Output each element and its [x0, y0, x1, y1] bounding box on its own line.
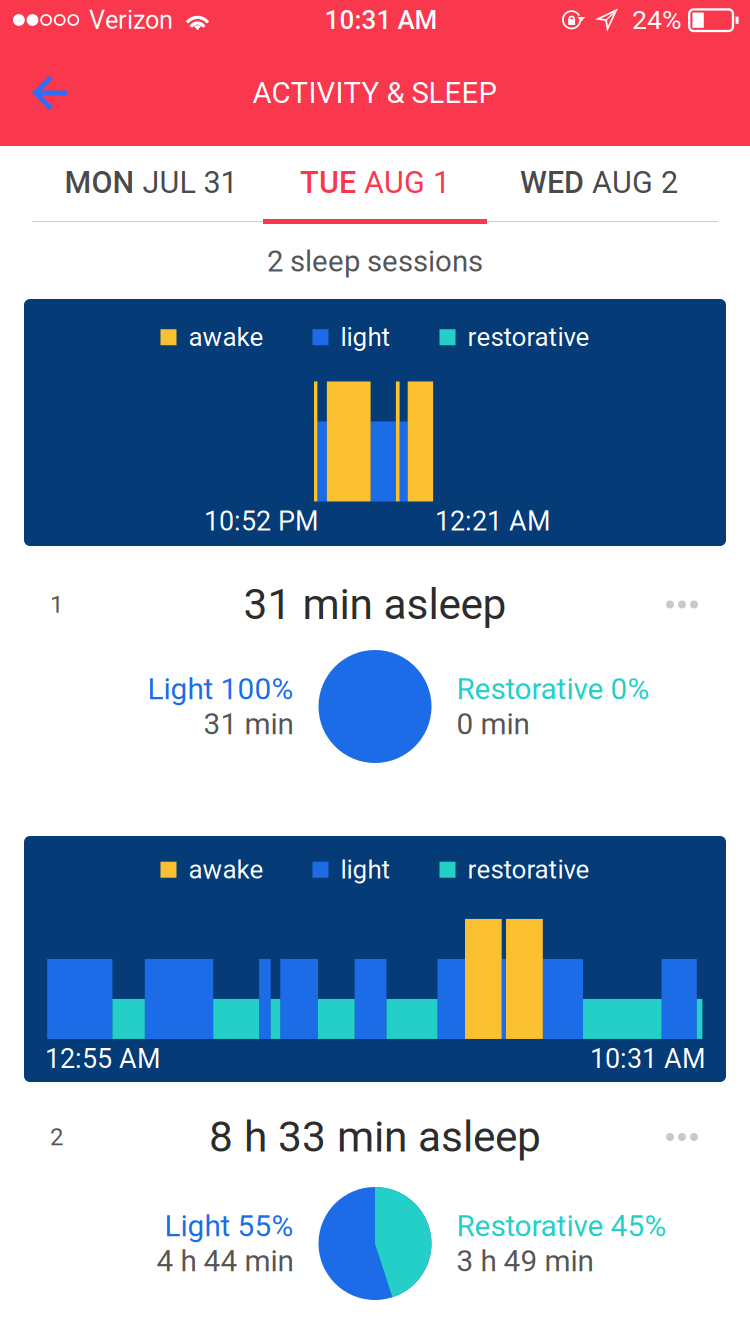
- staticText: light: [340, 322, 390, 352]
- staticText: 10:31 AM: [590, 1043, 706, 1075]
- staticText: 12:55 AM: [45, 1043, 161, 1075]
- staticText: 1: [50, 590, 63, 618]
- button[interactable]: Session options: [642, 1113, 750, 1161]
- staticText: 10:31 AM: [324, 5, 437, 35]
- staticText: 12:21 AM: [435, 505, 551, 537]
- staticText: 24%: [632, 4, 682, 36]
- staticText: awake: [188, 322, 263, 352]
- button[interactable]: MON: [39, 146, 263, 224]
- staticText: light: [340, 854, 390, 885]
- button[interactable]: TUE: [263, 146, 487, 224]
- staticText: 2: [50, 1123, 63, 1151]
- staticText: restorative: [467, 854, 589, 885]
- staticText: 31 min: [203, 707, 293, 741]
- staticText: restorative: [467, 322, 589, 352]
- staticText: Restorative 45%: [456, 1209, 666, 1243]
- button[interactable]: Back: [0, 52, 96, 133]
- staticText: 0 min: [456, 707, 529, 741]
- staticText: Restorative 0%: [456, 672, 649, 706]
- staticText: TUE: [300, 165, 364, 200]
- staticText: Light 100%: [147, 672, 293, 706]
- staticText: 8 h 33 min asleep: [209, 1112, 541, 1162]
- staticText: 4 h 44 min: [156, 1244, 293, 1278]
- staticText: Light 55%: [164, 1209, 293, 1243]
- staticText: WED: [520, 165, 592, 200]
- staticText: 31 min asleep: [243, 580, 506, 629]
- staticText: 3 h 49 min: [456, 1244, 593, 1278]
- staticText: 10:52 PM: [204, 505, 319, 537]
- button[interactable]: Session options: [642, 580, 750, 628]
- button[interactable]: WED: [487, 146, 711, 224]
- staticText: AUG 2: [592, 165, 678, 200]
- staticText: AUG 1: [364, 165, 450, 200]
- staticText: JUL 31: [142, 165, 237, 200]
- staticText: 2 sleep sessions: [267, 244, 483, 279]
- staticText: MON: [64, 165, 142, 200]
- staticText: Verizon: [89, 5, 173, 35]
- staticText: ACTIVITY & SLEEP: [252, 76, 497, 110]
- staticText: awake: [188, 854, 263, 885]
